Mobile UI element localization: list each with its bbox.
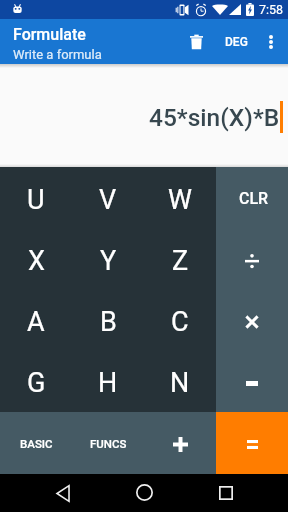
button[interactable]: Equals xyxy=(216,412,288,474)
button[interactable]: C xyxy=(144,289,216,350)
button[interactable]: N xyxy=(144,350,216,412)
button[interactable]: A xyxy=(0,289,72,350)
staticText: A xyxy=(27,306,45,338)
staticText: B xyxy=(100,306,117,338)
button[interactable]: Divide xyxy=(216,228,288,289)
staticText: N xyxy=(170,367,190,399)
button[interactable]: Z xyxy=(144,228,216,289)
staticText: G xyxy=(27,367,46,399)
button[interactable]: U xyxy=(0,167,72,228)
staticText: 7:58 xyxy=(259,2,284,17)
button[interactable]: Recents xyxy=(207,474,245,512)
button[interactable]: B xyxy=(72,289,144,350)
staticText: Write a formula xyxy=(13,47,102,62)
button[interactable]: Back xyxy=(44,474,82,512)
button[interactable]: Multiply xyxy=(216,289,288,350)
staticText: FUNCS xyxy=(90,437,127,450)
staticText: Formulate xyxy=(13,25,86,44)
staticText: Y xyxy=(100,245,117,277)
button[interactable]: H xyxy=(72,350,144,412)
staticText: Z xyxy=(172,245,189,277)
staticText: W xyxy=(168,184,192,216)
staticText: C xyxy=(171,306,189,338)
button[interactable]: G xyxy=(0,350,72,412)
staticText: H xyxy=(98,367,118,399)
button[interactable]: FUNCS xyxy=(72,412,144,474)
staticText: CLR xyxy=(239,189,269,208)
staticText: V xyxy=(99,184,117,216)
button[interactable]: Delete xyxy=(178,24,214,60)
button[interactable]: Add xyxy=(144,412,216,474)
button[interactable]: W xyxy=(144,167,216,228)
button[interactable]: BASIC xyxy=(0,412,72,474)
button[interactable]: V xyxy=(72,167,144,228)
staticText: U xyxy=(27,184,45,216)
staticText: 45*sin(X)*B xyxy=(149,103,280,132)
button[interactable]: DEG xyxy=(218,22,254,62)
button[interactable]: X xyxy=(0,228,72,289)
button[interactable]: Home xyxy=(125,474,163,512)
button[interactable]: Minus xyxy=(216,350,288,412)
staticText: DEG xyxy=(225,35,248,49)
button[interactable]: Clear xyxy=(216,167,288,228)
staticText: X xyxy=(28,245,45,277)
staticText: BASIC xyxy=(20,437,53,450)
button[interactable]: Y xyxy=(72,228,144,289)
button[interactable]: More options xyxy=(253,24,288,60)
